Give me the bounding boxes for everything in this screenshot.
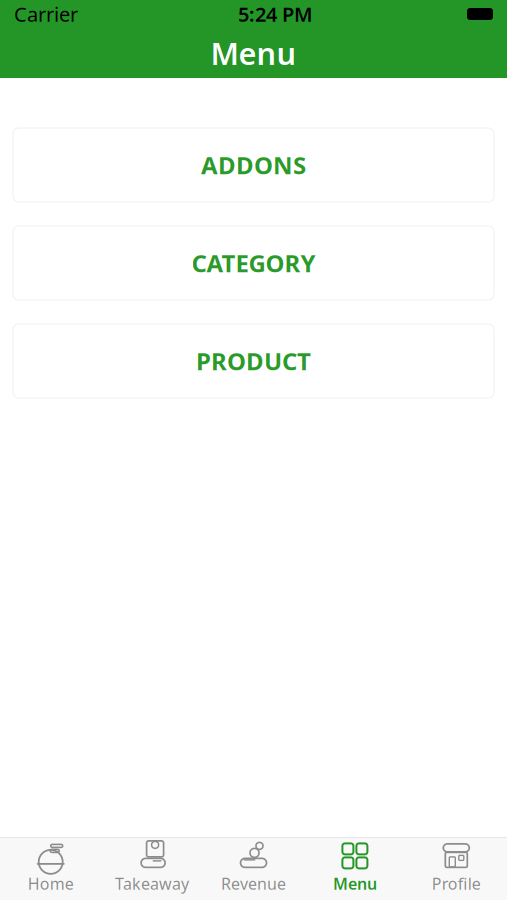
staticText: CATEGORY — [191, 247, 315, 279]
button[interactable]: CATEGORY — [13, 226, 494, 300]
button[interactable]: Profile — [406, 836, 507, 900]
staticText: PRODUCT — [196, 345, 311, 377]
button[interactable]: ADDONS — [13, 128, 494, 202]
staticText: ADDONS — [201, 149, 306, 181]
button[interactable]: Menu — [304, 836, 406, 900]
staticText: 5:24 PM — [238, 1, 313, 27]
button[interactable]: PRODUCT — [13, 324, 494, 398]
staticText: Menu — [210, 33, 296, 73]
staticText: Revenue — [221, 873, 286, 894]
staticText: Carrier — [14, 1, 78, 27]
button[interactable]: Home — [0, 836, 101, 900]
button[interactable]: Takeaway — [101, 836, 203, 900]
staticText: Profile — [432, 873, 481, 894]
staticText: Home — [28, 873, 74, 894]
staticText: Menu — [333, 873, 377, 894]
button[interactable]: Revenue — [203, 836, 304, 900]
staticText: Takeaway — [115, 873, 189, 894]
